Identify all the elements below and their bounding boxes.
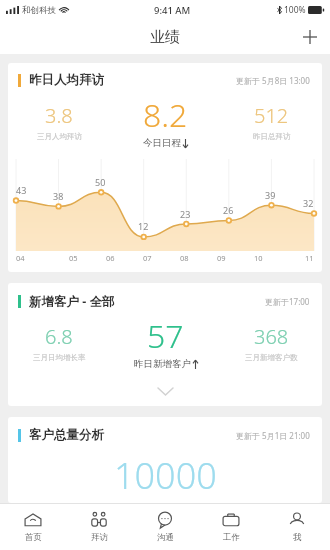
staticText: 沟通 [157,532,174,543]
button[interactable]: 拜访 [66,503,132,550]
button[interactable]: 首页 [0,503,66,550]
staticText: 368 [254,323,289,350]
button[interactable]: 工作 [198,503,264,550]
staticText: 39 [265,189,276,201]
button[interactable]: 昨日人均拜访 [8,63,322,272]
staticText: 512 [254,102,289,129]
staticText: 26 [223,204,234,216]
staticText: 10 [254,253,263,263]
staticText: 07 [143,253,152,263]
staticText: 23 [180,208,191,220]
staticText: 05 [69,253,78,263]
button[interactable]: Add [290,20,330,54]
staticText: 3.8 [45,102,73,129]
staticText: 昨日人均拜访 [29,72,104,88]
staticText: 11 [305,253,314,263]
staticText: 04 [16,253,25,263]
staticText: 38 [53,190,64,202]
staticText: 更新于 5月8日 13:00 [236,75,310,86]
button[interactable]: 我 [264,503,330,550]
staticText: 50 [95,176,106,188]
staticText: 06 [106,253,115,263]
button[interactable]: 新增客户 - 全部 [8,283,322,406]
staticText: 57 [147,314,184,358]
staticText: 工作 [223,532,240,543]
staticText: 8.2 [143,93,188,137]
staticText: 业绩 [150,28,180,47]
staticText: 32 [303,197,314,209]
staticText: 今日日程 [143,137,181,149]
staticText: 更新于 5月1日 21:00 [236,430,310,441]
staticText: 昨日总拜访 [253,132,291,141]
staticText: 09 [217,253,226,263]
staticText: 新增客户 - 全部 [29,293,115,310]
staticText: 三月日均增长率 [33,353,86,362]
staticText: 客户总量分析 [29,427,104,443]
staticText: 我 [293,532,302,543]
staticText: 三月新增客户数 [245,353,298,362]
staticText: 43 [16,184,27,196]
staticText: 首页 [25,532,42,543]
staticText: 昨日新增客户 [134,358,191,370]
staticText: 6.8 [45,323,73,350]
staticText: 三月人均拜访 [37,132,82,141]
staticText: 10000 [114,451,217,500]
staticText: 08 [180,253,189,263]
staticText: 12 [138,220,149,232]
staticText: 拜访 [91,532,108,543]
button[interactable]: 客户总量分析 [8,417,322,503]
button[interactable]: 沟通 [132,503,198,550]
staticText: 100% [284,4,306,16]
staticText: 更新于17:00 [265,296,310,307]
staticText: 和创科技 [22,5,56,16]
staticText: 9:41 AM [154,4,191,17]
